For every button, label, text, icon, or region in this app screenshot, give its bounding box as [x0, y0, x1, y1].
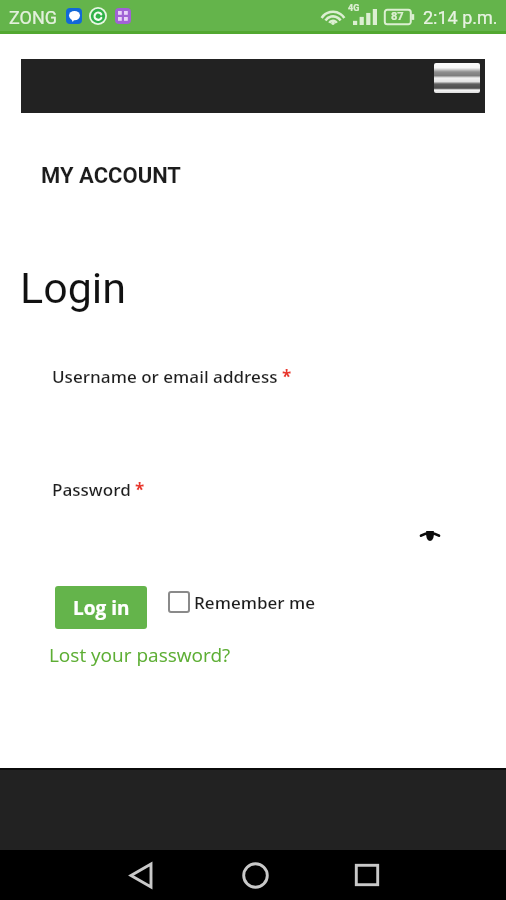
staticText: *	[282, 365, 292, 388]
button[interactable]: Lost your password?	[49, 642, 231, 668]
button[interactable]: Home	[231, 856, 279, 894]
staticText: 4G	[348, 3, 360, 14]
button[interactable]: Remember me	[168, 590, 316, 614]
button[interactable]: Log in	[55, 586, 147, 629]
staticText: Password	[52, 478, 131, 501]
button[interactable]: Recent apps	[343, 856, 391, 894]
staticText: MY ACCOUNT	[41, 163, 181, 189]
button[interactable]: Open menu	[434, 63, 480, 93]
staticText: Remember me	[194, 591, 316, 614]
button[interactable]: Back	[117, 856, 165, 894]
staticText: 87	[391, 10, 404, 23]
staticText: Log in	[73, 595, 130, 621]
button[interactable]: Show password	[414, 519, 446, 551]
staticText: *	[135, 478, 145, 501]
staticText: ZONG	[9, 7, 58, 28]
staticText: Login	[20, 263, 127, 313]
staticText: 2:14 p.m.	[423, 7, 498, 28]
staticText: Username or email address	[52, 365, 278, 388]
